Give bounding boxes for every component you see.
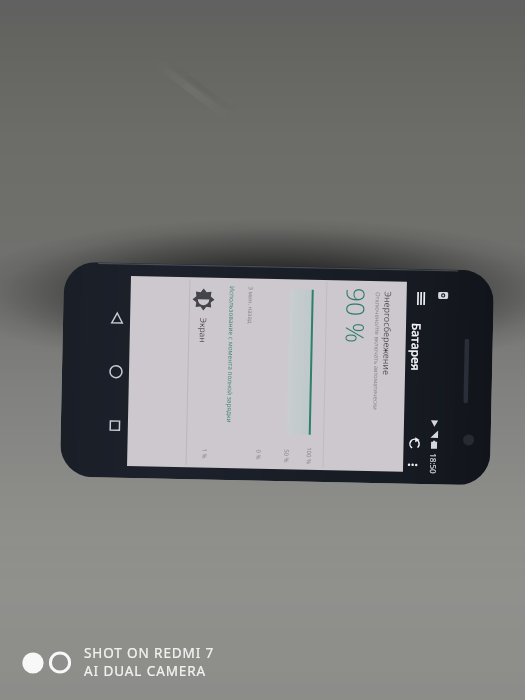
staticText: 90 % [339, 287, 374, 344]
staticText: Батарея [408, 323, 425, 371]
staticText: Экран [197, 317, 209, 343]
staticText: SHOT ON REDMI 7 AI DUAL CAMERA [84, 644, 215, 680]
staticText: 1 % [200, 448, 208, 459]
staticText: Использование с момента полной зарядки [225, 286, 237, 423]
button[interactable]: Navigation menu [410, 288, 432, 309]
button[interactable]: Батарея [407, 321, 428, 377]
staticText: Энергосбережение [381, 291, 395, 375]
button[interactable]: Home [105, 360, 127, 383]
button[interactable]: More options [405, 457, 420, 472]
staticText: 50 % [282, 449, 290, 463]
button[interactable]: Recent apps [104, 414, 126, 437]
staticText: Отключено/Не включать автоматически [371, 292, 382, 410]
staticText: 0 % [254, 449, 262, 460]
staticText: 18:50 [428, 453, 439, 474]
button[interactable]: Back [106, 307, 128, 330]
staticText: 3 мин. назад [246, 286, 255, 324]
staticText: 100 % [305, 447, 313, 464]
button[interactable]: Refresh [406, 436, 423, 452]
